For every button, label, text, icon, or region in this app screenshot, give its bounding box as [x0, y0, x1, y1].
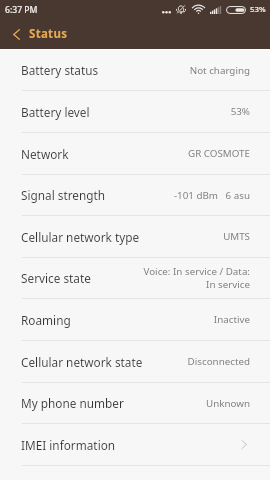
- staticText: Disconnected: [187, 355, 250, 368]
- staticText: IMEI information: [21, 437, 116, 453]
- staticText: 53%: [230, 105, 250, 118]
- button[interactable]: Service state: [0, 258, 270, 299]
- staticText: Signal strength: [21, 187, 106, 203]
- staticText: Roaming: [21, 312, 71, 328]
- staticText: Inactive: [213, 313, 250, 326]
- button[interactable]: Cellular network state: [0, 341, 270, 383]
- button[interactable]: My phone number: [0, 383, 270, 424]
- button[interactable]: Battery status: [0, 50, 270, 91]
- staticText: Service state: [21, 270, 91, 286]
- button[interactable]: IMEI information: [0, 424, 270, 466]
- staticText: Battery status: [21, 62, 99, 78]
- staticText: Not charging: [189, 64, 250, 77]
- staticText: GR COSMOTE: [188, 147, 250, 160]
- button[interactable]: Cellular network type: [0, 216, 270, 258]
- button[interactable]: Battery level: [0, 91, 270, 133]
- button[interactable]: Roaming: [0, 299, 270, 341]
- staticText: 6:37 PM: [5, 4, 38, 16]
- button[interactable]: Back: [0, 19, 29, 49]
- staticText: -101 dBm 6 asu: [173, 189, 250, 202]
- button[interactable]: Network: [0, 133, 270, 175]
- staticText: My phone number: [21, 395, 124, 411]
- staticText: Battery level: [21, 104, 90, 120]
- staticText: Network: [21, 146, 69, 162]
- staticText: Status: [29, 26, 68, 42]
- staticText: Unknown: [206, 397, 250, 410]
- staticText: UMTS: [223, 230, 250, 243]
- button[interactable]: Signal strength: [0, 175, 270, 216]
- staticText: Cellular network type: [21, 229, 140, 245]
- staticText: 53%: [250, 4, 266, 15]
- staticText: Voice: In service / Data: In service: [143, 265, 250, 291]
- staticText: Cellular network state: [21, 354, 143, 370]
